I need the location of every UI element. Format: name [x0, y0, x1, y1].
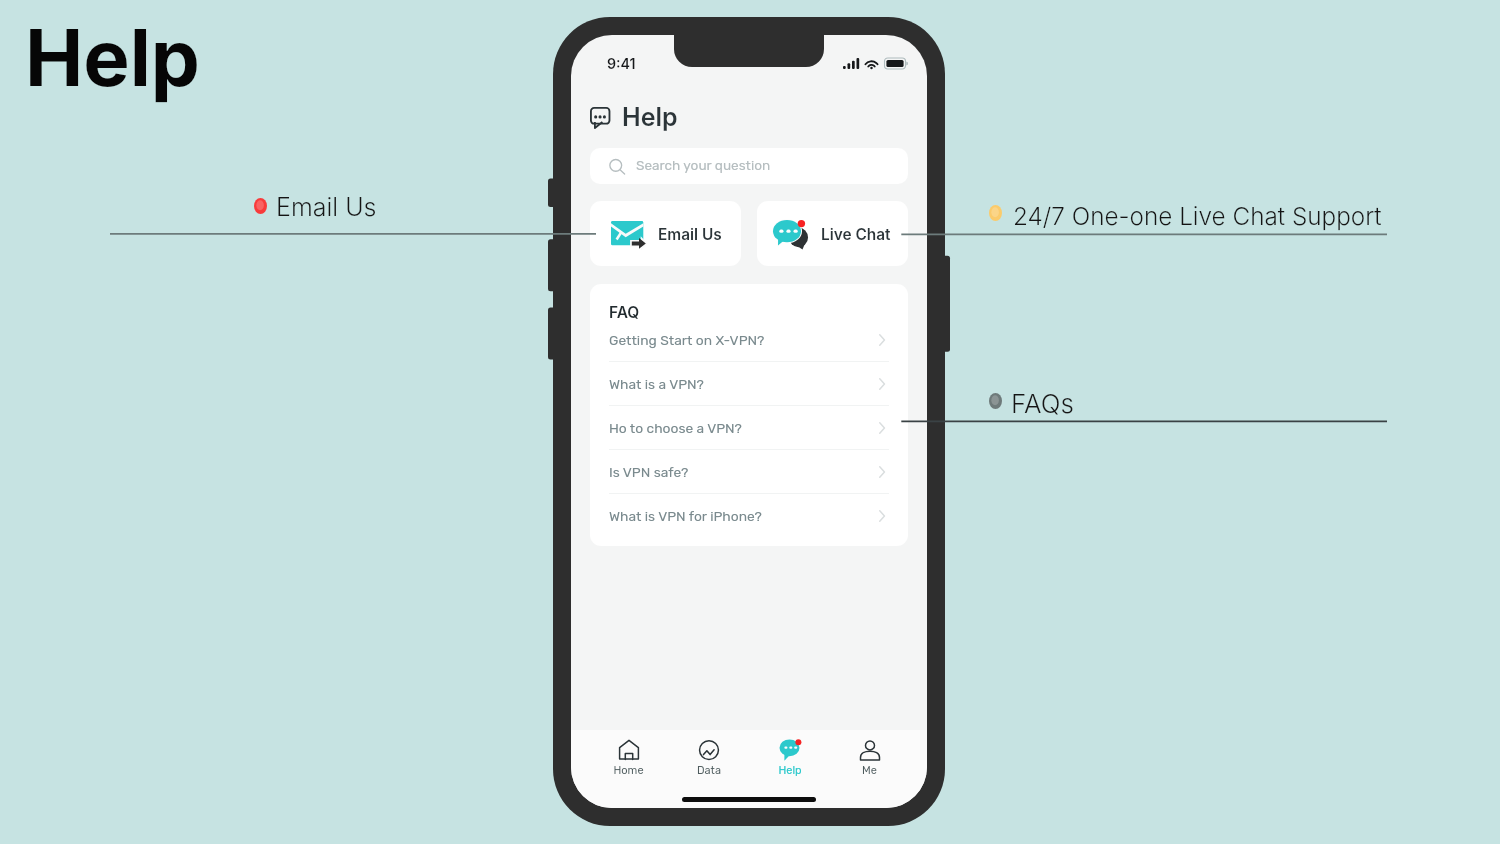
staticText: Home	[613, 764, 644, 777]
button[interactable]: Getting Start on X-VPN?	[590, 318, 908, 362]
staticText: 24/7 One-one Live Chat Support	[1013, 201, 1382, 230]
staticText: Live Chat	[821, 225, 891, 244]
staticText: What is a VPN?	[609, 376, 879, 392]
staticText: Me	[862, 764, 877, 777]
staticText: Help	[778, 764, 802, 777]
staticText: Help	[622, 102, 678, 132]
staticText: Search your question	[636, 157, 771, 173]
button[interactable]: Email Us	[590, 201, 741, 266]
staticText: Email Us	[276, 192, 377, 222]
staticText: FAQ	[609, 303, 640, 322]
button[interactable]: Data	[685, 730, 732, 777]
button[interactable]: Home	[605, 730, 652, 777]
button[interactable]: Search your question	[590, 148, 908, 184]
staticText: Data	[697, 764, 721, 777]
button[interactable]: Is VPN safe?	[590, 450, 908, 494]
button[interactable]: Live Chat	[757, 201, 908, 266]
button[interactable]: Ho to choose a VPN?	[590, 406, 908, 450]
staticText: 9:41	[607, 55, 636, 72]
button[interactable]: Me	[846, 730, 893, 777]
button[interactable]: Help	[766, 730, 813, 777]
staticText: Ho to choose a VPN?	[609, 420, 879, 436]
staticText: Email Us	[658, 225, 722, 244]
button[interactable]: What is a VPN?	[590, 362, 908, 406]
staticText: Getting Start on X-VPN?	[609, 332, 879, 348]
staticText: What is VPN for iPhone?	[609, 508, 879, 524]
staticText: FAQs	[1011, 388, 1074, 419]
button[interactable]: What is VPN for iPhone?	[590, 494, 908, 538]
staticText: Is VPN safe?	[609, 464, 879, 480]
staticText: Help	[25, 10, 201, 104]
